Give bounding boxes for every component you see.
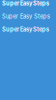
staticText: Super Easy Steps [2, 13, 50, 20]
staticText: Super Easy Steps [2, 0, 49, 7]
staticText: Super Easy Steps [2, 26, 49, 33]
